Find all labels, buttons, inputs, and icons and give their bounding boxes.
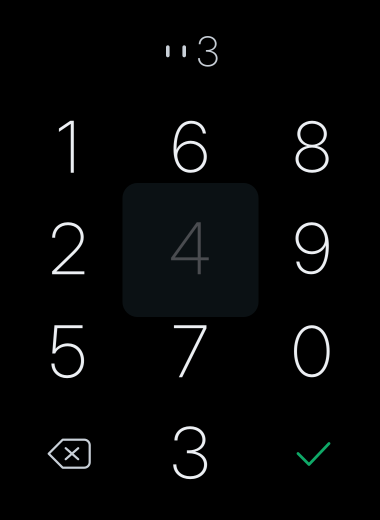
button[interactable] [7,301,129,402]
button[interactable] [7,96,129,197]
button[interactable] [129,198,251,299]
button[interactable] [7,198,129,299]
button[interactable]: Confirm [251,402,373,503]
button[interactable]: Delete [7,402,129,503]
button[interactable] [251,301,373,402]
button[interactable] [251,198,373,299]
button[interactable] [129,301,251,402]
button[interactable] [129,402,251,503]
button[interactable] [129,96,251,197]
button[interactable] [251,96,373,197]
